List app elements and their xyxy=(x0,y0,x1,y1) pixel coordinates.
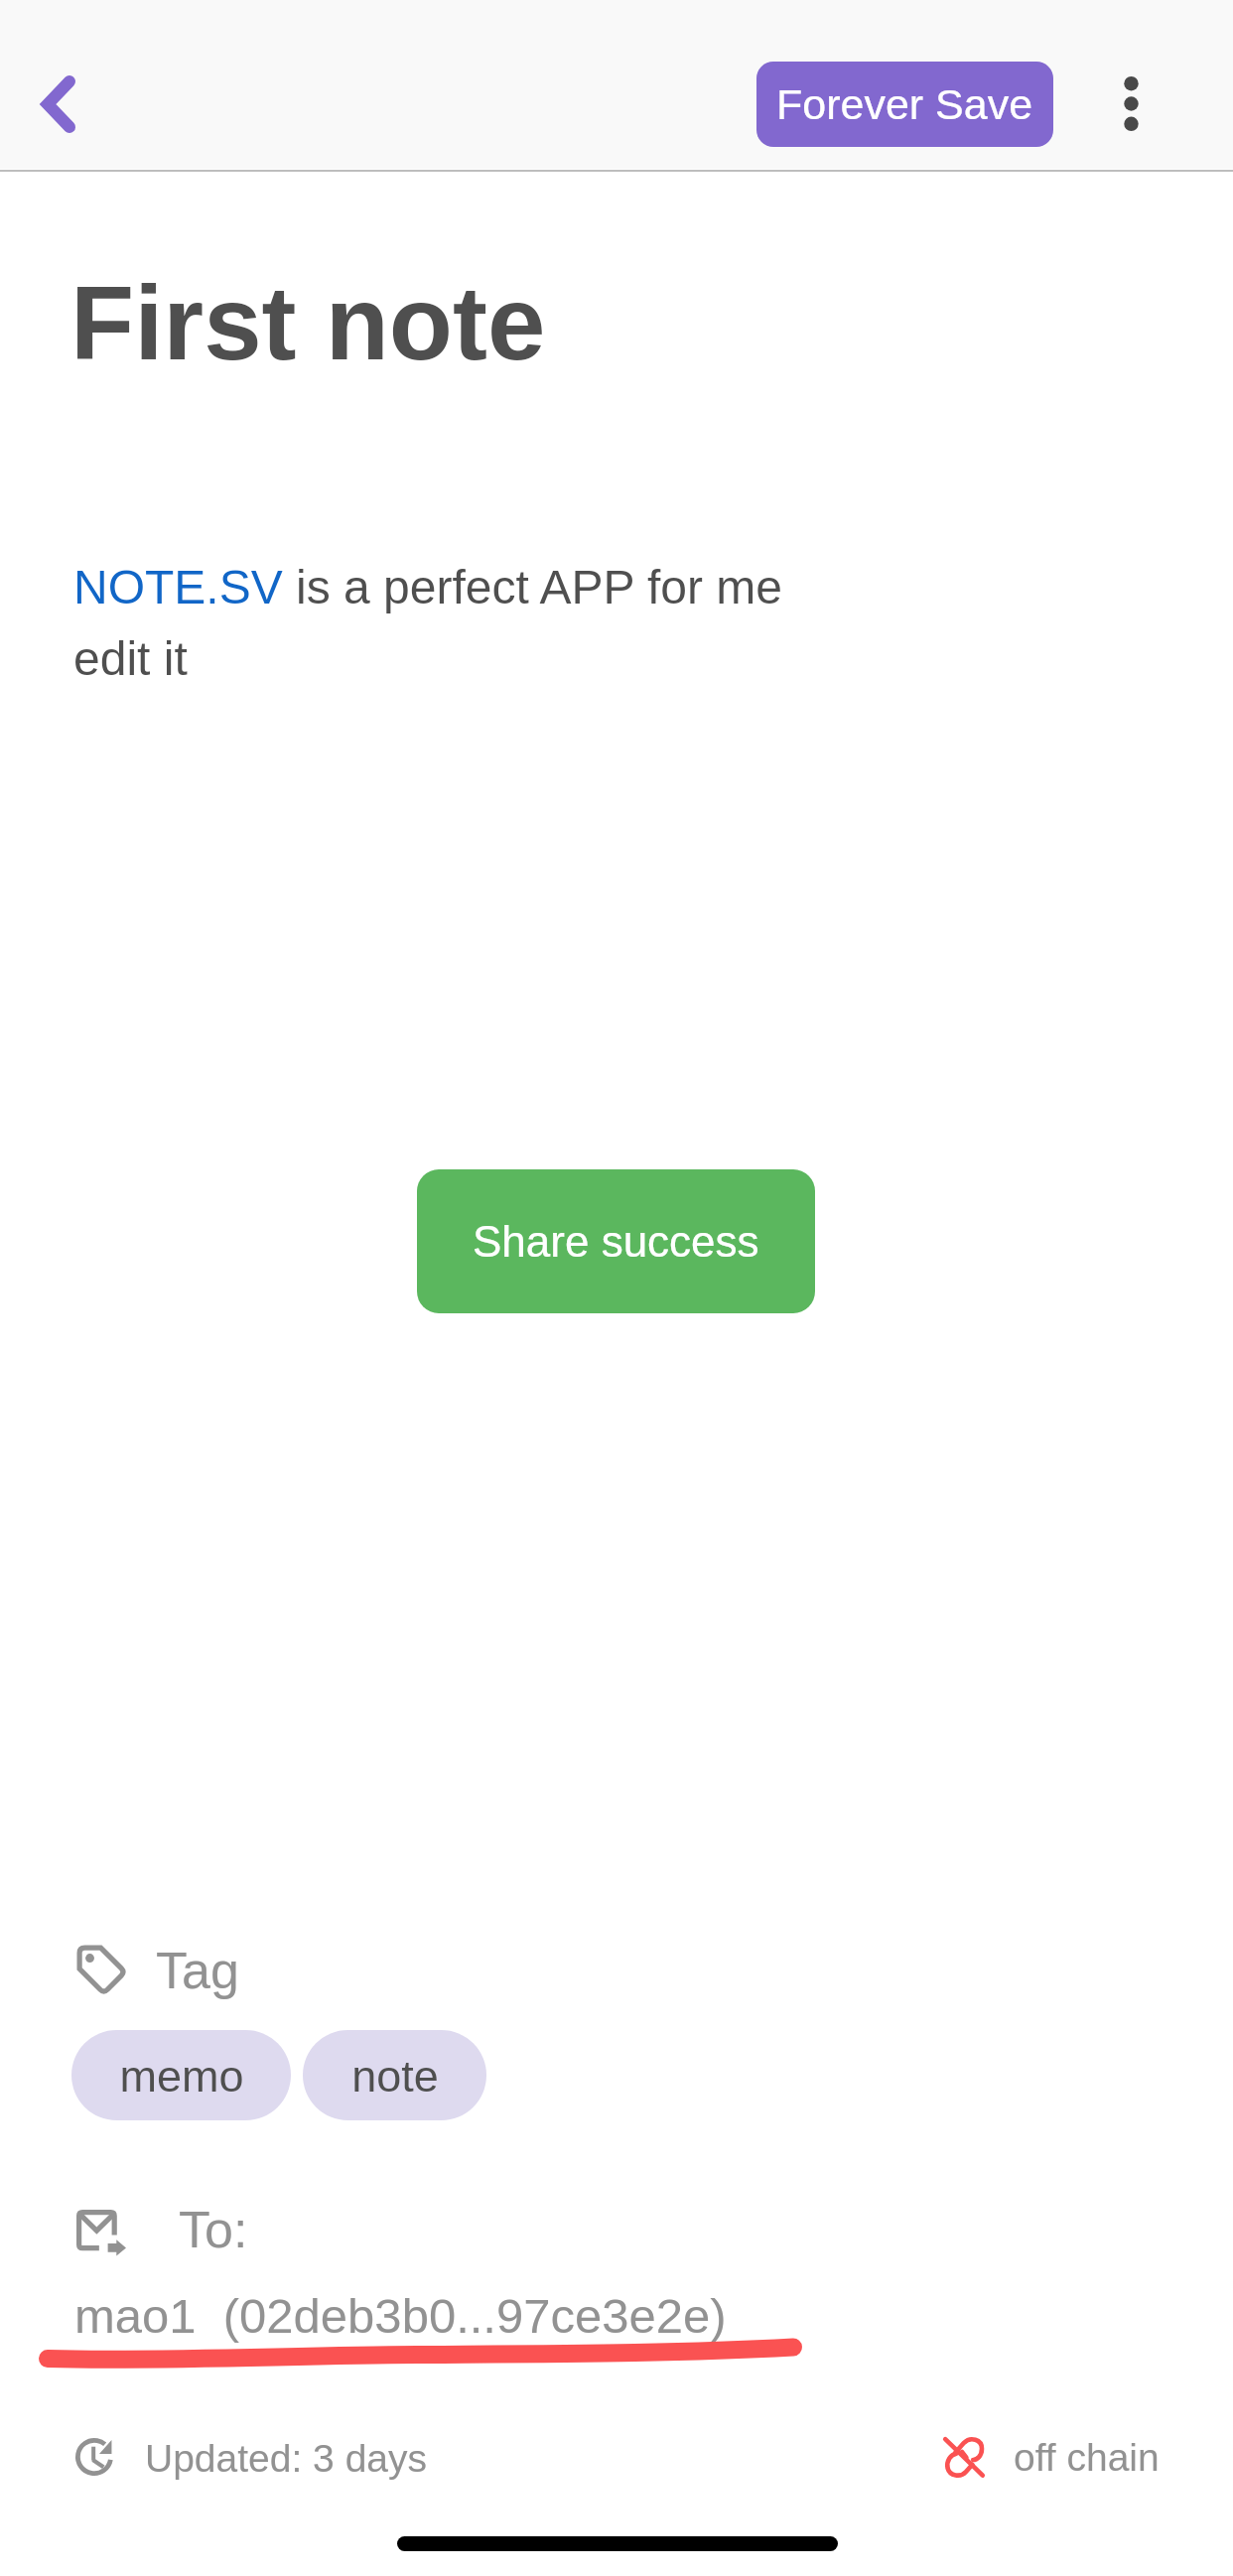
staticText: Forever Save xyxy=(776,80,1033,128)
staticText: Updated: 3 days xyxy=(145,2437,428,2481)
staticText: NOTE.SV is a perfect APP for me edit it xyxy=(73,561,783,685)
button[interactable]: Forever Save xyxy=(756,62,1053,147)
button[interactable]: note xyxy=(303,2030,486,2120)
staticText: Tag xyxy=(156,1942,239,1999)
staticText: First note xyxy=(70,265,546,381)
staticText: memo xyxy=(119,2051,244,2101)
button[interactable]: Back xyxy=(14,45,97,124)
staticText: note xyxy=(351,2051,439,2101)
staticText: Share success xyxy=(473,1217,759,1266)
button[interactable]: memo xyxy=(71,2030,291,2120)
button[interactable]: Share success xyxy=(417,1169,815,1313)
button[interactable]: More options xyxy=(1081,48,1180,161)
staticText: To: xyxy=(179,2201,248,2258)
staticText: off chain xyxy=(1014,2436,1160,2480)
staticText: mao1 (02deb3b0...97ce3e2e) xyxy=(74,2289,727,2344)
